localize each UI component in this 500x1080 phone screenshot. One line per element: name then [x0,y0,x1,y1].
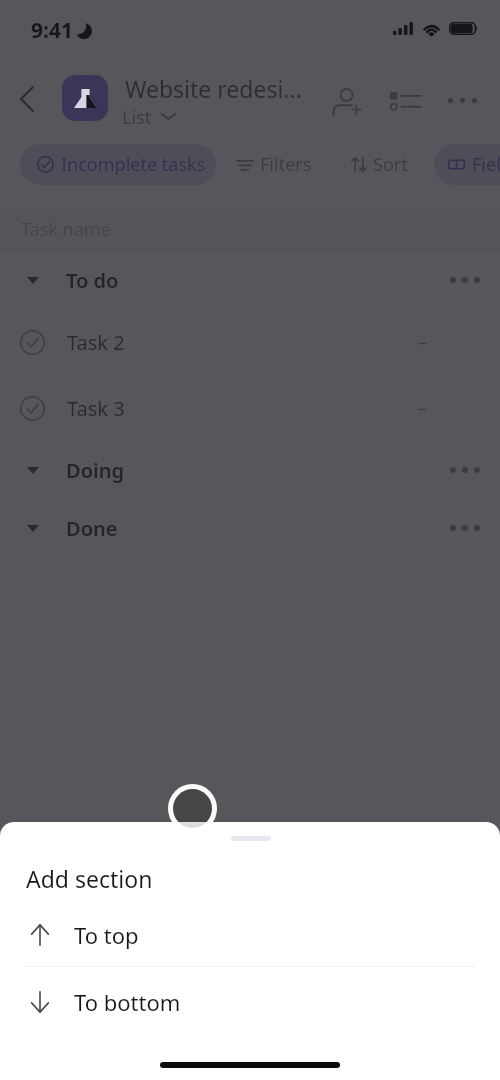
staticText: List [122,105,152,130]
staticText: Task 3 [67,395,125,422]
staticText: Done [66,515,118,542]
staticText: Incomplete tasks [61,152,206,177]
staticText: To bottom [74,987,181,1017]
staticText: Website redesi... [125,73,302,104]
staticText: Filters [260,152,312,177]
staticText: Sort [373,152,408,177]
staticText: To do [66,267,119,294]
button[interactable]: Add member [326,78,370,122]
button[interactable]: Add task [173,789,212,828]
button[interactable]: Doing [0,446,500,494]
button[interactable]: To top [0,905,500,965]
staticText: Doing [66,457,124,484]
button[interactable]: Incomplete tasks [20,144,216,185]
button[interactable]: Task 2 [0,314,500,370]
staticText: To top [74,920,139,950]
button[interactable]: Back [7,79,47,119]
button[interactable]: Fiel [434,144,500,185]
button[interactable]: Filters [232,144,317,185]
staticText: Task 2 [67,329,125,356]
staticText: Task name [21,217,111,242]
button[interactable]: More options [442,80,482,120]
staticText: – [418,330,427,355]
button[interactable]: To bottom [0,972,500,1032]
button[interactable] [62,75,108,121]
button[interactable]: View options [385,80,425,120]
button[interactable]: Done [0,504,500,552]
button[interactable]: Task 3 [0,380,500,436]
staticText: – [418,396,427,421]
staticText: Fiel [472,152,500,177]
staticText: Add section [26,863,153,894]
staticText: 9:41 [31,16,73,45]
button[interactable]: Sort [346,144,413,185]
button[interactable]: To do [0,256,500,304]
